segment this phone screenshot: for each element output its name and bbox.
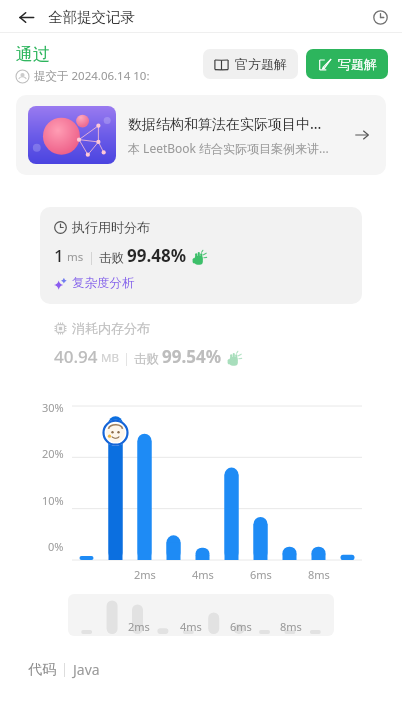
staticText: 4ms — [180, 619, 202, 634]
staticText: 99.48% — [127, 244, 187, 267]
button[interactable]: 复杂度分析 — [54, 275, 135, 291]
button[interactable]: History — [366, 6, 388, 28]
staticText: 数据结构和算法在实际项目中... — [128, 114, 322, 133]
button[interactable]: 执行用时分布 — [40, 207, 362, 304]
staticText: 消耗内存分布 — [72, 320, 150, 336]
staticText: 全部提交记录 — [48, 8, 135, 26]
button[interactable]: Back — [14, 5, 38, 29]
staticText: 2ms — [134, 567, 156, 582]
staticText: 复杂度分析 — [72, 275, 135, 291]
staticText: 官方题解 — [235, 56, 287, 72]
staticText: 写题解 — [338, 56, 377, 72]
staticText: 6ms — [230, 619, 252, 634]
staticText: MB — [101, 350, 119, 366]
staticText: 2ms — [128, 619, 150, 634]
staticText: 99.54% — [162, 345, 222, 368]
staticText: 击败 — [99, 250, 124, 266]
staticText: 0% — [48, 539, 64, 554]
button[interactable]: 数据结构和算法在实际项目中... — [16, 95, 386, 175]
staticText: 代码 — [28, 661, 56, 679]
staticText: ms — [67, 249, 84, 265]
staticText: 通过 — [16, 44, 50, 65]
staticText: 8ms — [280, 619, 302, 634]
staticText: Java — [73, 660, 100, 679]
staticText: 10% — [42, 493, 64, 508]
staticText: 1 — [54, 244, 64, 267]
button[interactable]: 写题解 — [306, 49, 388, 79]
staticText: 40.94 — [54, 345, 98, 368]
staticText: 20% — [42, 446, 64, 461]
other: Open LeetBook — [350, 123, 374, 147]
staticText: 执行用时分布 — [72, 219, 150, 235]
button[interactable]: 官方题解 — [203, 49, 298, 79]
staticText: 30% — [42, 400, 64, 415]
staticText: 本 LeetBook 结合实际项目案例来讲... — [128, 140, 329, 156]
staticText: 4ms — [192, 567, 214, 582]
staticText: 提交于 2024.06.14 10: — [34, 68, 150, 84]
staticText: 8ms — [308, 567, 330, 582]
staticText: 6ms — [250, 567, 272, 582]
staticText: 击败 — [134, 351, 159, 367]
button[interactable]: 2ms — [68, 594, 334, 636]
